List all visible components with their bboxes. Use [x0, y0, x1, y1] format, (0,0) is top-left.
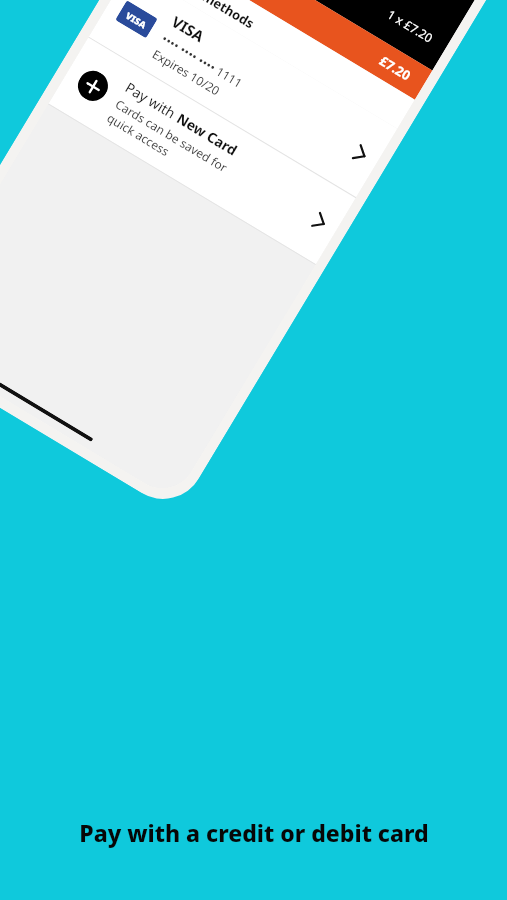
staticText: Payment methods: [147, 0, 258, 32]
button[interactable]: Add new card: [48, 37, 356, 264]
staticText: Pay with a credit or debit card: [79, 817, 429, 848]
staticText: quick access: [104, 109, 173, 159]
staticText: £7.20: [376, 52, 414, 84]
staticText: Pay with: [122, 78, 183, 125]
staticText: VISA: [168, 11, 209, 46]
staticText: Cards can be saved for: [113, 96, 231, 175]
staticText: New Card: [173, 109, 241, 160]
staticText: Expires 10/20: [150, 46, 223, 98]
other: Add new card: [72, 65, 114, 106]
staticText: 1 x £7.20: [385, 6, 437, 46]
staticText: VISA: [124, 9, 149, 30]
button[interactable]: VISA: [89, 0, 397, 197]
staticText: •••• •••• •••• 1111: [159, 30, 245, 91]
